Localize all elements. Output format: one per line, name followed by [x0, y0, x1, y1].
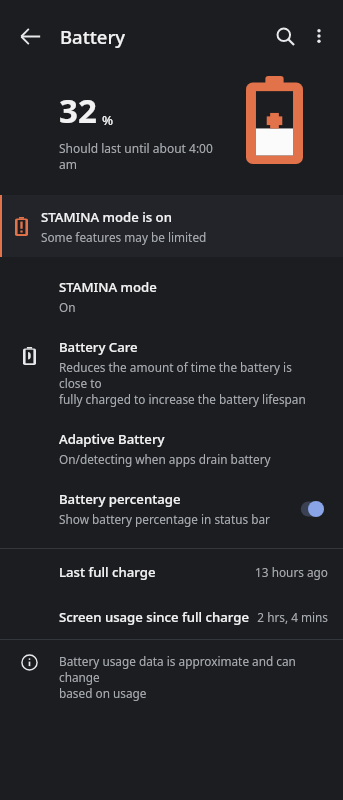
button[interactable]: STAMINA mode	[0, 268, 343, 328]
staticText: On/detecting when apps drain battery	[59, 451, 271, 467]
staticText: Last full charge	[59, 563, 255, 581]
button[interactable]: Search	[263, 14, 307, 58]
staticText: STAMINA mode	[59, 278, 157, 296]
staticText: STAMINA mode is on	[41, 208, 172, 226]
staticText: Battery percentage	[59, 490, 181, 508]
staticText: Battery Care	[59, 338, 138, 356]
staticText: On	[59, 299, 76, 315]
button[interactable]: Battery Care	[0, 328, 343, 420]
staticText: Reduces the amount of time the battery i…	[59, 359, 323, 407]
staticText: Screen usage since full charge	[59, 608, 257, 626]
button[interactable]: Screen usage since full charge	[0, 594, 343, 639]
staticText: Adaptive Battery	[59, 430, 165, 448]
button[interactable]: Last full charge	[0, 549, 343, 594]
button[interactable]: Adaptive Battery	[0, 420, 343, 480]
button[interactable]: Back	[6, 12, 54, 60]
button[interactable]: Battery percentage toggle	[295, 497, 329, 521]
button[interactable]: Battery percentage	[0, 480, 343, 540]
button[interactable]: More options	[297, 14, 341, 58]
staticText: 32	[59, 88, 97, 133]
button[interactable]: STAMINA mode is on	[0, 195, 343, 257]
staticText: Battery	[60, 24, 126, 49]
staticText: Battery usage data is approximate and ca…	[59, 653, 329, 701]
staticText: Some features may be limited	[41, 229, 207, 245]
staticText: Show battery percentage in status bar	[59, 511, 270, 527]
staticText: Should last until about 4:00 am	[59, 140, 213, 173]
staticText: 13 hours ago	[255, 564, 328, 580]
staticText: 2 hrs, 4 mins	[257, 609, 328, 625]
staticText: %	[102, 111, 114, 129]
